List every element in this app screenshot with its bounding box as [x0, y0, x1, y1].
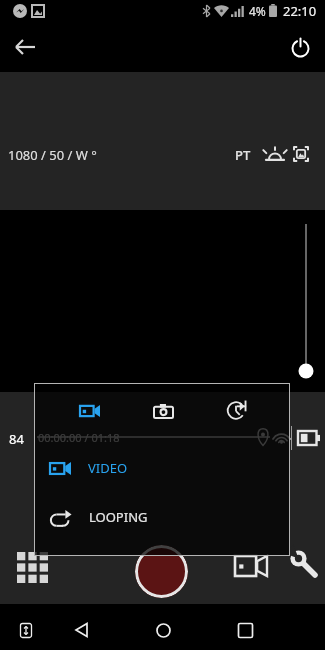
button[interactable]: LOOPING	[34, 495, 290, 539]
button[interactable]: Time lapse mode	[216, 391, 256, 431]
staticText: 1080 / 50 / W °	[8, 146, 97, 164]
staticText: LOOPING	[89, 508, 148, 526]
button[interactable]: Gallery	[8, 543, 56, 591]
button[interactable]: Power	[280, 27, 320, 67]
button[interactable]: Home	[147, 614, 179, 646]
staticText: PT	[235, 146, 251, 164]
staticText: 00:00:00 / 01:18	[38, 430, 120, 445]
button[interactable]: Switch camera mode	[229, 544, 273, 588]
button[interactable]: Settings	[281, 541, 325, 585]
button[interactable]: Video mode	[70, 391, 110, 431]
button[interactable]: Back	[5, 27, 45, 67]
staticText: VIDEO	[88, 459, 128, 477]
button[interactable]: Switch keyboard	[10, 614, 42, 646]
button[interactable]: Back	[65, 614, 97, 646]
button[interactable]: VIDEO	[34, 446, 290, 490]
staticText: 4%	[249, 3, 266, 19]
button[interactable]: Recent apps	[229, 614, 261, 646]
button[interactable]: Record	[135, 545, 188, 598]
staticText: 84	[9, 430, 24, 448]
button[interactable]: Photo mode	[143, 391, 183, 431]
staticText: 22:10	[283, 2, 317, 20]
